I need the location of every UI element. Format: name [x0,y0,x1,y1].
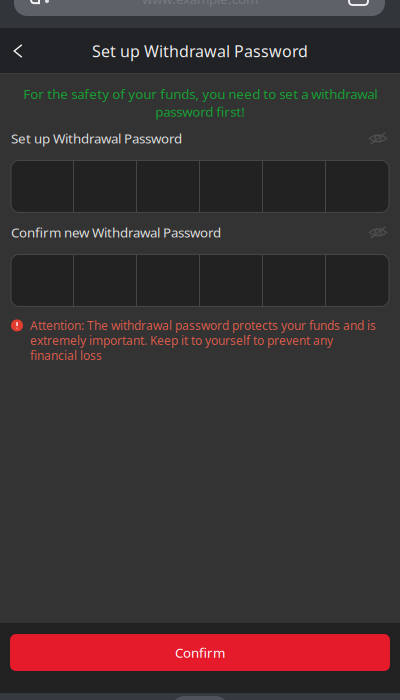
staticText: Confirm new Withdrawal Password [11,224,221,241]
staticText: For the safety of your funds, you need t… [23,85,377,120]
staticText: Set up Withdrawal Password [92,40,308,62]
staticText: Confirm [175,644,225,661]
staticText: Attention: The withdrawal password prote… [30,317,376,363]
staticText: Set up Withdrawal Password [11,130,182,147]
staticText: www.example.com [142,0,258,8]
button[interactable]: Confirm [10,634,390,671]
button[interactable]: Show Set up Withdrawal Password [367,131,389,145]
button[interactable]: Back [0,28,36,74]
button[interactable]: Show Confirm new Withdrawal Password [367,225,389,239]
